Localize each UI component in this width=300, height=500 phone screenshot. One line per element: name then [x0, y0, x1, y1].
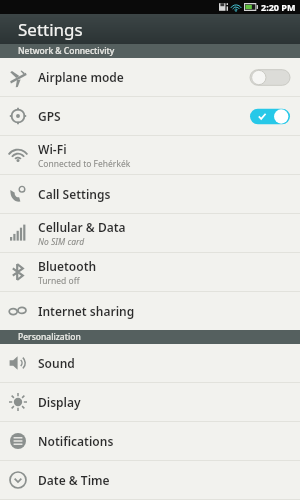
- staticText: Wi-Fi: [38, 141, 67, 157]
- staticText: Cellular & Data: [38, 219, 126, 235]
- button[interactable]: Notifications: [0, 422, 300, 460]
- staticText: Sound: [38, 355, 75, 371]
- button[interactable]: Sound: [0, 344, 300, 382]
- staticText: Airplane mode: [38, 69, 124, 85]
- staticText: Notifications: [38, 433, 114, 449]
- staticText: Settings: [18, 18, 83, 41]
- button[interactable]: Internet sharing: [0, 292, 300, 330]
- button[interactable]: Cellular & Data: [0, 214, 300, 252]
- button[interactable]: Display: [0, 383, 300, 421]
- staticText: Connected to Fehérkék: [38, 158, 131, 170]
- staticText: Network & Connectivity: [18, 45, 115, 57]
- button[interactable]: Toggle on: [250, 107, 290, 126]
- staticText: Bluetooth: [38, 258, 97, 274]
- button[interactable]: Airplane mode: [0, 58, 300, 96]
- staticText: Turned off: [38, 275, 80, 287]
- staticText: 2:20 PM: [261, 1, 296, 13]
- staticText: Personalization: [18, 331, 81, 343]
- button[interactable]: GPS: [0, 97, 300, 135]
- staticText: No SIM card: [38, 236, 85, 248]
- button[interactable]: Call Settings: [0, 175, 300, 213]
- staticText: GPS: [38, 108, 61, 124]
- button[interactable]: Toggle off: [250, 68, 290, 87]
- button[interactable]: Bluetooth: [0, 253, 300, 291]
- button[interactable]: Wi-Fi: [0, 136, 300, 174]
- staticText: Call Settings: [38, 186, 111, 202]
- staticText: Date & Time: [38, 472, 110, 488]
- button[interactable]: Date & Time: [0, 461, 300, 499]
- staticText: Internet sharing: [38, 303, 135, 319]
- staticText: Display: [38, 394, 81, 410]
